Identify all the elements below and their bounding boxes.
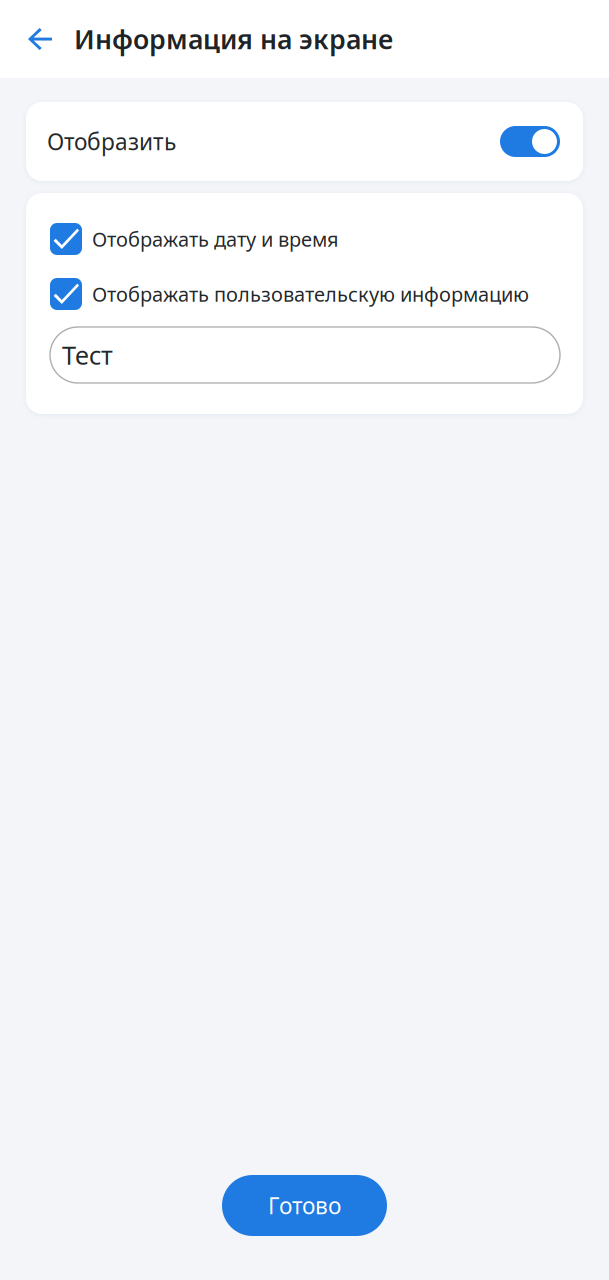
staticText: Отображать дату и время <box>92 226 339 252</box>
button[interactable]: Отображать пользовательскую информацию <box>50 278 583 310</box>
staticText: Отобразить <box>47 126 176 156</box>
staticText: Тест <box>62 338 113 372</box>
button[interactable]: Отображать дату и время <box>50 223 583 255</box>
button[interactable]: Тест <box>50 327 560 383</box>
staticText: Информация на экране <box>74 21 393 57</box>
button[interactable]: Назад <box>0 0 74 78</box>
staticText: Готово <box>268 1190 341 1220</box>
button[interactable]: Готово <box>222 1175 387 1236</box>
button[interactable]: Отобразить <box>500 126 560 157</box>
staticText: Отображать пользовательскую информацию <box>92 281 529 307</box>
